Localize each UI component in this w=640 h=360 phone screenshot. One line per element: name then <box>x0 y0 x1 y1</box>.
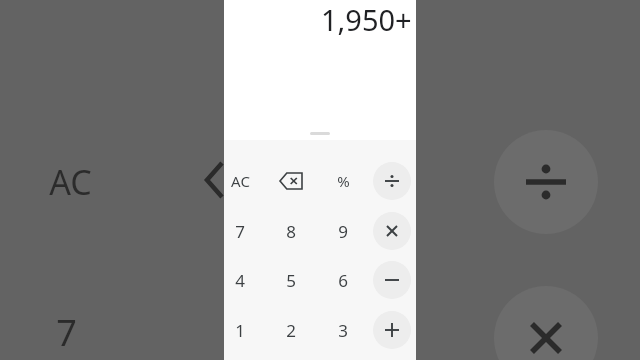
staticText: 4 <box>235 269 245 292</box>
button[interactable]: 5 <box>268 260 314 300</box>
button[interactable]: 8 <box>268 211 314 251</box>
button[interactable]: AC <box>217 161 263 201</box>
staticText: 1 <box>235 319 245 342</box>
button[interactable]: 6 <box>320 260 366 300</box>
button[interactable]: Operator <box>373 162 411 200</box>
button[interactable]: 7 <box>217 211 263 251</box>
button[interactable]: 9 <box>320 211 366 251</box>
staticText: 5 <box>286 269 296 292</box>
button[interactable]: Operator <box>373 261 411 299</box>
staticText: 8 <box>286 220 296 243</box>
button[interactable]: Backspace <box>268 161 314 201</box>
button[interactable]: 1 <box>217 310 263 350</box>
staticText: 1,950+ <box>321 0 412 36</box>
staticText: 2 <box>286 319 296 342</box>
button[interactable]: Operator <box>373 311 411 349</box>
button[interactable]: 3 <box>320 310 366 350</box>
button[interactable]: 2 <box>268 310 314 350</box>
button[interactable]: % <box>320 161 366 201</box>
button[interactable]: 4 <box>217 260 263 300</box>
staticText: 3 <box>338 319 348 342</box>
staticText: % <box>337 171 350 191</box>
staticText: 7 <box>56 308 77 357</box>
button[interactable]: Operator <box>373 212 411 250</box>
staticText: 9 <box>338 220 348 243</box>
staticText: AC <box>49 159 92 205</box>
staticText: 7 <box>235 220 245 243</box>
staticText: 6 <box>338 269 348 292</box>
staticText: AC <box>231 171 250 191</box>
